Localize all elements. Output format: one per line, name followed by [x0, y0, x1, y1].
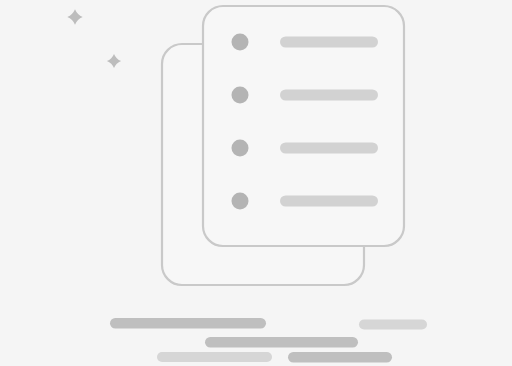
button[interactable]: Empty list illustration	[0, 0, 512, 366]
